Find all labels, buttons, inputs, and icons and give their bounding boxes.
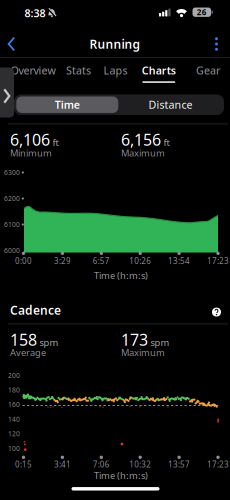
staticText: 173 xyxy=(121,329,148,350)
staticText: 6:57 xyxy=(93,256,110,266)
staticText: 10:32 xyxy=(129,459,151,470)
staticText: Minimum xyxy=(10,147,52,159)
staticText: Cadence xyxy=(10,302,61,318)
staticText: 158 xyxy=(10,329,37,350)
staticText: 0:00 xyxy=(15,256,32,266)
staticText: 140 xyxy=(8,415,20,424)
button[interactable]: Gear xyxy=(191,63,224,83)
button[interactable]: Laps xyxy=(99,63,132,83)
button[interactable]: Charts xyxy=(142,63,176,83)
staticText: 17:23 xyxy=(207,256,229,266)
staticText: 120 xyxy=(8,429,20,438)
button[interactable]: Stats xyxy=(62,63,95,83)
staticText: 200 xyxy=(8,371,20,380)
staticText: Stats xyxy=(66,63,91,77)
staticText: 3:29 xyxy=(54,256,71,266)
staticText: 6,156 xyxy=(121,129,161,150)
staticText: 100 xyxy=(8,444,20,453)
button[interactable]: Overview xyxy=(10,63,55,83)
staticText: Time (h:m:s) xyxy=(94,469,148,481)
staticText: 13:54 xyxy=(168,256,190,266)
staticText: ft xyxy=(163,136,169,149)
staticText: Time (h:m:s) xyxy=(94,269,148,282)
staticText: 6100 xyxy=(4,220,20,229)
staticText: 0:15 xyxy=(15,459,32,470)
staticText: 180 xyxy=(8,385,20,394)
staticText: 10:26 xyxy=(129,256,151,266)
button[interactable]: Open panel xyxy=(0,67,14,117)
staticText: Maximum xyxy=(121,147,165,159)
staticText: Time xyxy=(55,98,80,112)
button[interactable]: More options xyxy=(209,34,223,54)
staticText: Gear xyxy=(196,63,220,77)
staticText: 26 xyxy=(197,7,207,17)
staticText: 17:23 xyxy=(207,459,229,470)
staticText: spm xyxy=(150,336,169,349)
staticText: Distance xyxy=(148,98,192,112)
staticText: Laps xyxy=(103,63,127,77)
staticText: 3:41 xyxy=(54,459,71,470)
staticText: 6000 xyxy=(4,246,20,255)
staticText: Average xyxy=(10,346,46,359)
staticText: Running xyxy=(89,36,140,52)
staticText: 6200 xyxy=(4,194,20,203)
staticText: 6,106 xyxy=(10,129,50,150)
button[interactable]: Time xyxy=(16,96,118,113)
staticText: spm xyxy=(39,336,58,349)
staticText: ft xyxy=(52,136,58,149)
button[interactable]: Help xyxy=(211,307,222,318)
button[interactable]: Back xyxy=(2,34,20,54)
staticText: 13:57 xyxy=(168,459,190,470)
staticText: 8:38 xyxy=(24,6,45,20)
staticText: Maximum xyxy=(121,346,165,359)
staticText: 160 xyxy=(8,400,20,409)
staticText: Charts xyxy=(142,63,176,77)
staticText: Overview xyxy=(10,63,55,77)
button[interactable]: Distance xyxy=(119,96,221,113)
staticText: 7:06 xyxy=(93,459,110,470)
staticText: 6300 xyxy=(4,168,20,177)
